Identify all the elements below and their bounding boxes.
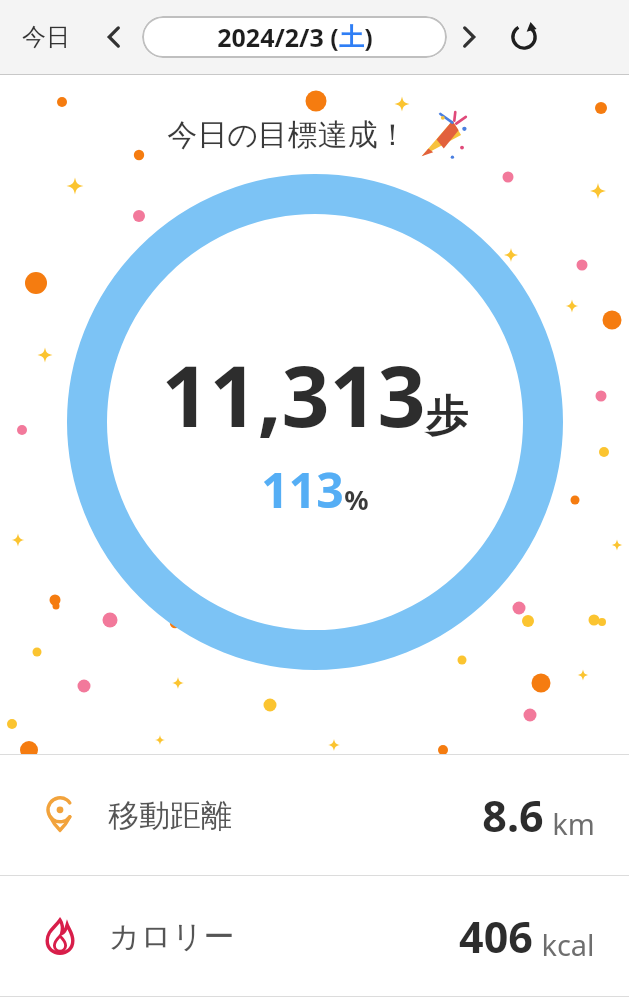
staticText: 土 (339, 22, 364, 53)
staticText: 2024/2/3 ( (217, 20, 339, 54)
button[interactable]: 次の日 (447, 15, 491, 59)
staticText: 8.6 (482, 786, 544, 845)
staticText: 今日 (22, 22, 70, 52)
other: 移動距離 (40, 795, 80, 835)
button[interactable]: 今日 (16, 16, 76, 58)
staticText: カロリー (108, 917, 235, 956)
staticText: 406 (459, 907, 533, 966)
button[interactable]: 更新 (499, 12, 549, 62)
button[interactable]: 2024/2/3 ( (142, 16, 447, 58)
staticText: 今日の目標達成！ (167, 116, 408, 154)
button[interactable]: 前の日 (92, 15, 136, 59)
staticText: 移動距離 (108, 796, 232, 835)
other: カロリー (40, 916, 80, 956)
staticText: kcal (541, 925, 595, 964)
button[interactable]: カロリー (0, 876, 629, 996)
staticText: % (344, 481, 369, 518)
staticText: 113 (261, 457, 344, 522)
button[interactable]: 移動距離 (0, 755, 629, 875)
staticText: 歩 (426, 390, 468, 443)
staticText: ) (364, 20, 373, 54)
staticText: km (552, 804, 595, 843)
staticText: 11,313 (161, 337, 426, 451)
